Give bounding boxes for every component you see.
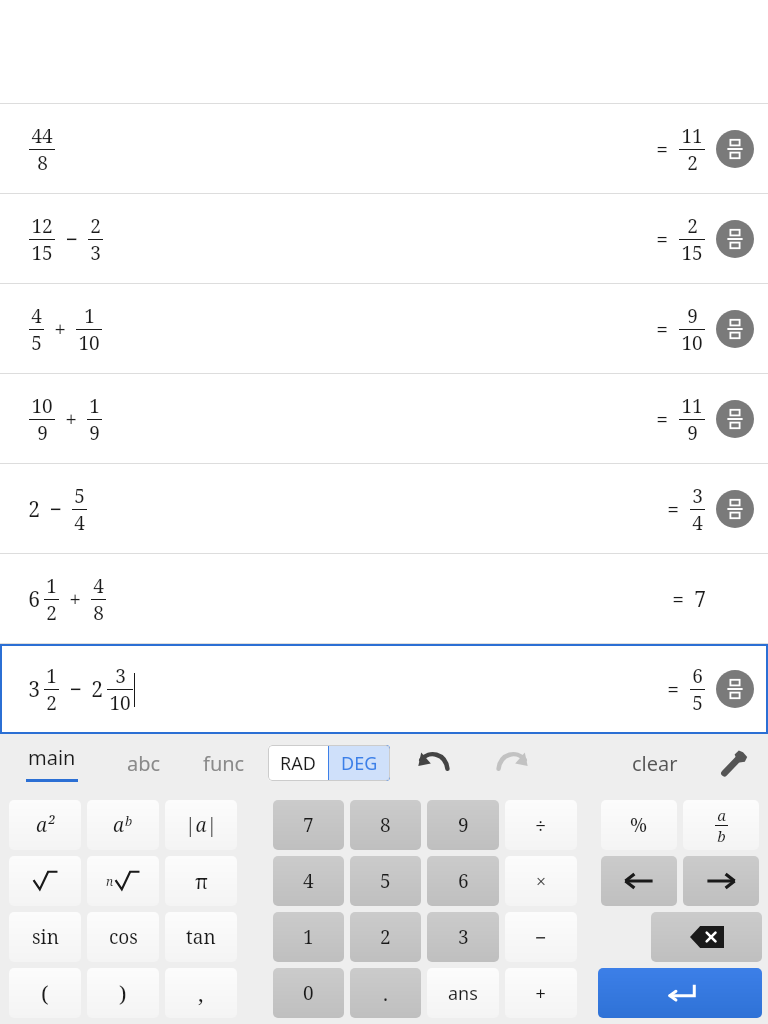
- staticText: +: [69, 585, 81, 614]
- button[interactable]: n: [87, 856, 159, 906]
- button[interactable]: func: [184, 734, 264, 792]
- staticText: 6: [28, 585, 40, 614]
- staticText: −: [49, 495, 62, 524]
- button[interactable]: +: [505, 968, 577, 1018]
- button[interactable]: −: [505, 912, 577, 962]
- staticText: 8: [93, 600, 104, 626]
- button[interactable]: a: [87, 800, 159, 850]
- button[interactable]: 3: [0, 644, 768, 734]
- button[interactable]: (: [9, 968, 81, 1018]
- button[interactable]: Toggle fraction form: [716, 310, 754, 348]
- staticText: 4: [74, 510, 85, 536]
- button[interactable]: 7: [273, 800, 344, 850]
- button[interactable]: Enter: [598, 968, 762, 1018]
- staticText: ÷: [535, 812, 547, 839]
- staticText: ans: [448, 981, 478, 1006]
- button[interactable]: 4: [273, 856, 344, 906]
- staticText: 6: [692, 663, 703, 689]
- staticText: n: [106, 873, 114, 889]
- button[interactable]: 6: [0, 554, 768, 644]
- button[interactable]: ,: [165, 968, 237, 1018]
- staticText: 1: [46, 663, 57, 689]
- staticText: 1: [89, 393, 100, 419]
- button[interactable]: main: [0, 734, 104, 792]
- staticText: −: [69, 675, 82, 704]
- button[interactable]: a²: [9, 800, 81, 850]
- staticText: =: [667, 675, 679, 704]
- staticText: 2: [687, 213, 698, 239]
- button[interactable]: 5: [350, 856, 421, 906]
- staticText: main: [28, 744, 76, 771]
- button[interactable]: 3: [427, 912, 499, 962]
- button[interactable]: clear: [632, 737, 678, 789]
- button[interactable]: 6: [427, 856, 499, 906]
- button[interactable]: ): [87, 968, 159, 1018]
- button[interactable]: Redo: [486, 737, 538, 789]
- staticText: 11: [681, 393, 703, 419]
- button[interactable]: 44: [0, 104, 768, 194]
- staticText: 3: [115, 663, 126, 689]
- staticText: π: [195, 868, 208, 895]
- button[interactable]: RAD: [268, 745, 328, 781]
- staticText: 9: [37, 420, 48, 446]
- button[interactable]: 0: [273, 968, 344, 1018]
- staticText: sin: [32, 924, 59, 950]
- button[interactable]: Settings: [708, 737, 760, 789]
- staticText: 9: [89, 420, 100, 446]
- staticText: .: [383, 980, 388, 1007]
- button[interactable]: ÷: [505, 800, 577, 850]
- staticText: 15: [31, 240, 53, 266]
- button[interactable]: [9, 856, 81, 906]
- button[interactable]: π: [165, 856, 237, 906]
- button[interactable]: 9: [427, 800, 499, 850]
- staticText: 0: [303, 980, 314, 1006]
- button[interactable]: cos: [87, 912, 159, 962]
- staticText: 1: [303, 924, 314, 950]
- staticText: 2: [91, 675, 103, 704]
- staticText: 5: [692, 690, 703, 716]
- staticText: 8: [380, 812, 391, 838]
- staticText: (: [41, 978, 49, 1008]
- button[interactable]: |a|: [165, 800, 237, 850]
- button[interactable]: abc: [104, 734, 184, 792]
- staticText: 3: [458, 924, 469, 950]
- button[interactable]: ans: [427, 968, 499, 1018]
- staticText: %: [630, 812, 648, 838]
- button[interactable]: 2: [0, 464, 768, 554]
- staticText: ,: [198, 978, 204, 1008]
- button[interactable]: 10: [0, 374, 768, 464]
- button[interactable]: Toggle fraction form: [716, 220, 754, 258]
- staticText: 3: [28, 675, 40, 704]
- button[interactable]: Undo: [408, 737, 460, 789]
- button[interactable]: Move right: [683, 856, 759, 906]
- button[interactable]: %: [601, 800, 677, 850]
- staticText: 5: [31, 330, 42, 356]
- button[interactable]: 2: [350, 912, 421, 962]
- staticText: +: [54, 315, 66, 344]
- button[interactable]: .: [350, 968, 421, 1018]
- button[interactable]: Backspace: [651, 912, 762, 962]
- button[interactable]: 1: [273, 912, 344, 962]
- button[interactable]: Toggle fraction form: [716, 490, 754, 528]
- button[interactable]: 4: [0, 284, 768, 374]
- staticText: 10: [31, 393, 53, 419]
- button[interactable]: ×: [505, 856, 577, 906]
- button[interactable]: sin: [9, 912, 81, 962]
- staticText: 3: [90, 240, 101, 266]
- button[interactable]: Toggle fraction form: [716, 400, 754, 438]
- button[interactable]: Move left: [601, 856, 677, 906]
- staticText: =: [656, 315, 668, 344]
- staticText: 2: [46, 600, 57, 626]
- button[interactable]: a: [683, 800, 759, 850]
- button[interactable]: 12: [0, 194, 768, 284]
- staticText: +: [535, 980, 547, 1007]
- staticText: 44: [31, 123, 53, 149]
- staticText: b: [717, 826, 726, 846]
- button[interactable]: 8: [350, 800, 421, 850]
- staticText: 2: [90, 213, 101, 239]
- button[interactable]: Toggle fraction form: [716, 130, 754, 168]
- button[interactable]: tan: [165, 912, 237, 962]
- staticText: =: [656, 405, 668, 434]
- button[interactable]: DEG: [328, 745, 390, 781]
- button[interactable]: Toggle fraction form: [716, 670, 754, 708]
